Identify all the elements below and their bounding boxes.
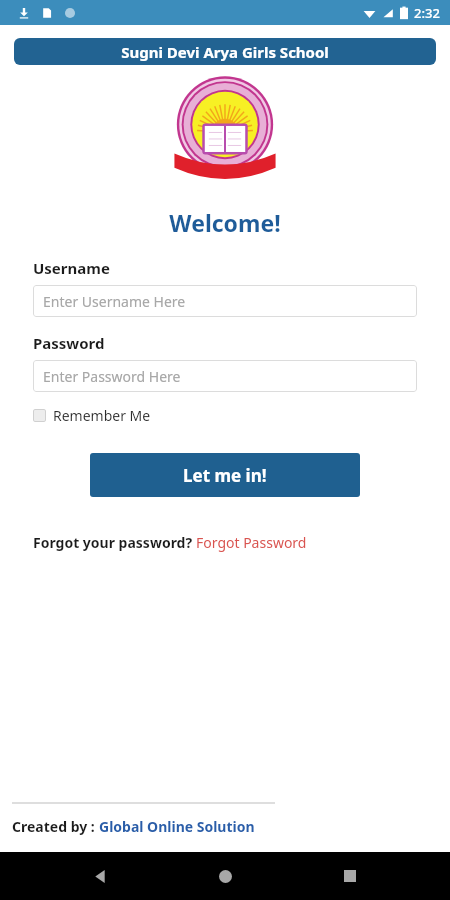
- button[interactable]: Let me in!: [90, 453, 360, 497]
- staticText: 2:32: [414, 4, 440, 22]
- button[interactable]: Remember Me: [33, 406, 151, 425]
- staticText: Username: [33, 258, 110, 278]
- button[interactable]: Sugni Devi Arya Girls School: [14, 38, 436, 65]
- button[interactable]: Home: [209, 860, 241, 892]
- staticText: Password: [33, 333, 105, 353]
- staticText: Enter Password Here: [43, 367, 181, 386]
- staticText: Remember Me: [53, 406, 151, 425]
- button[interactable]: Enter Password Here: [33, 360, 417, 392]
- staticText: Forgot your password?: [33, 533, 196, 552]
- button[interactable]: Back: [84, 860, 116, 892]
- staticText: Sugni Devi Arya Girls School: [121, 42, 329, 62]
- button[interactable]: Recent apps: [334, 860, 366, 892]
- staticText: Let me in!: [183, 464, 267, 487]
- button[interactable]: Enter Username Here: [33, 285, 417, 317]
- staticText: Enter Username Here: [43, 292, 186, 311]
- staticText: Welcome!: [0, 207, 450, 238]
- button[interactable]: Global Online Solution: [99, 817, 255, 836]
- staticText: Created by :: [12, 817, 99, 836]
- button[interactable]: Forgot Password: [196, 533, 307, 552]
